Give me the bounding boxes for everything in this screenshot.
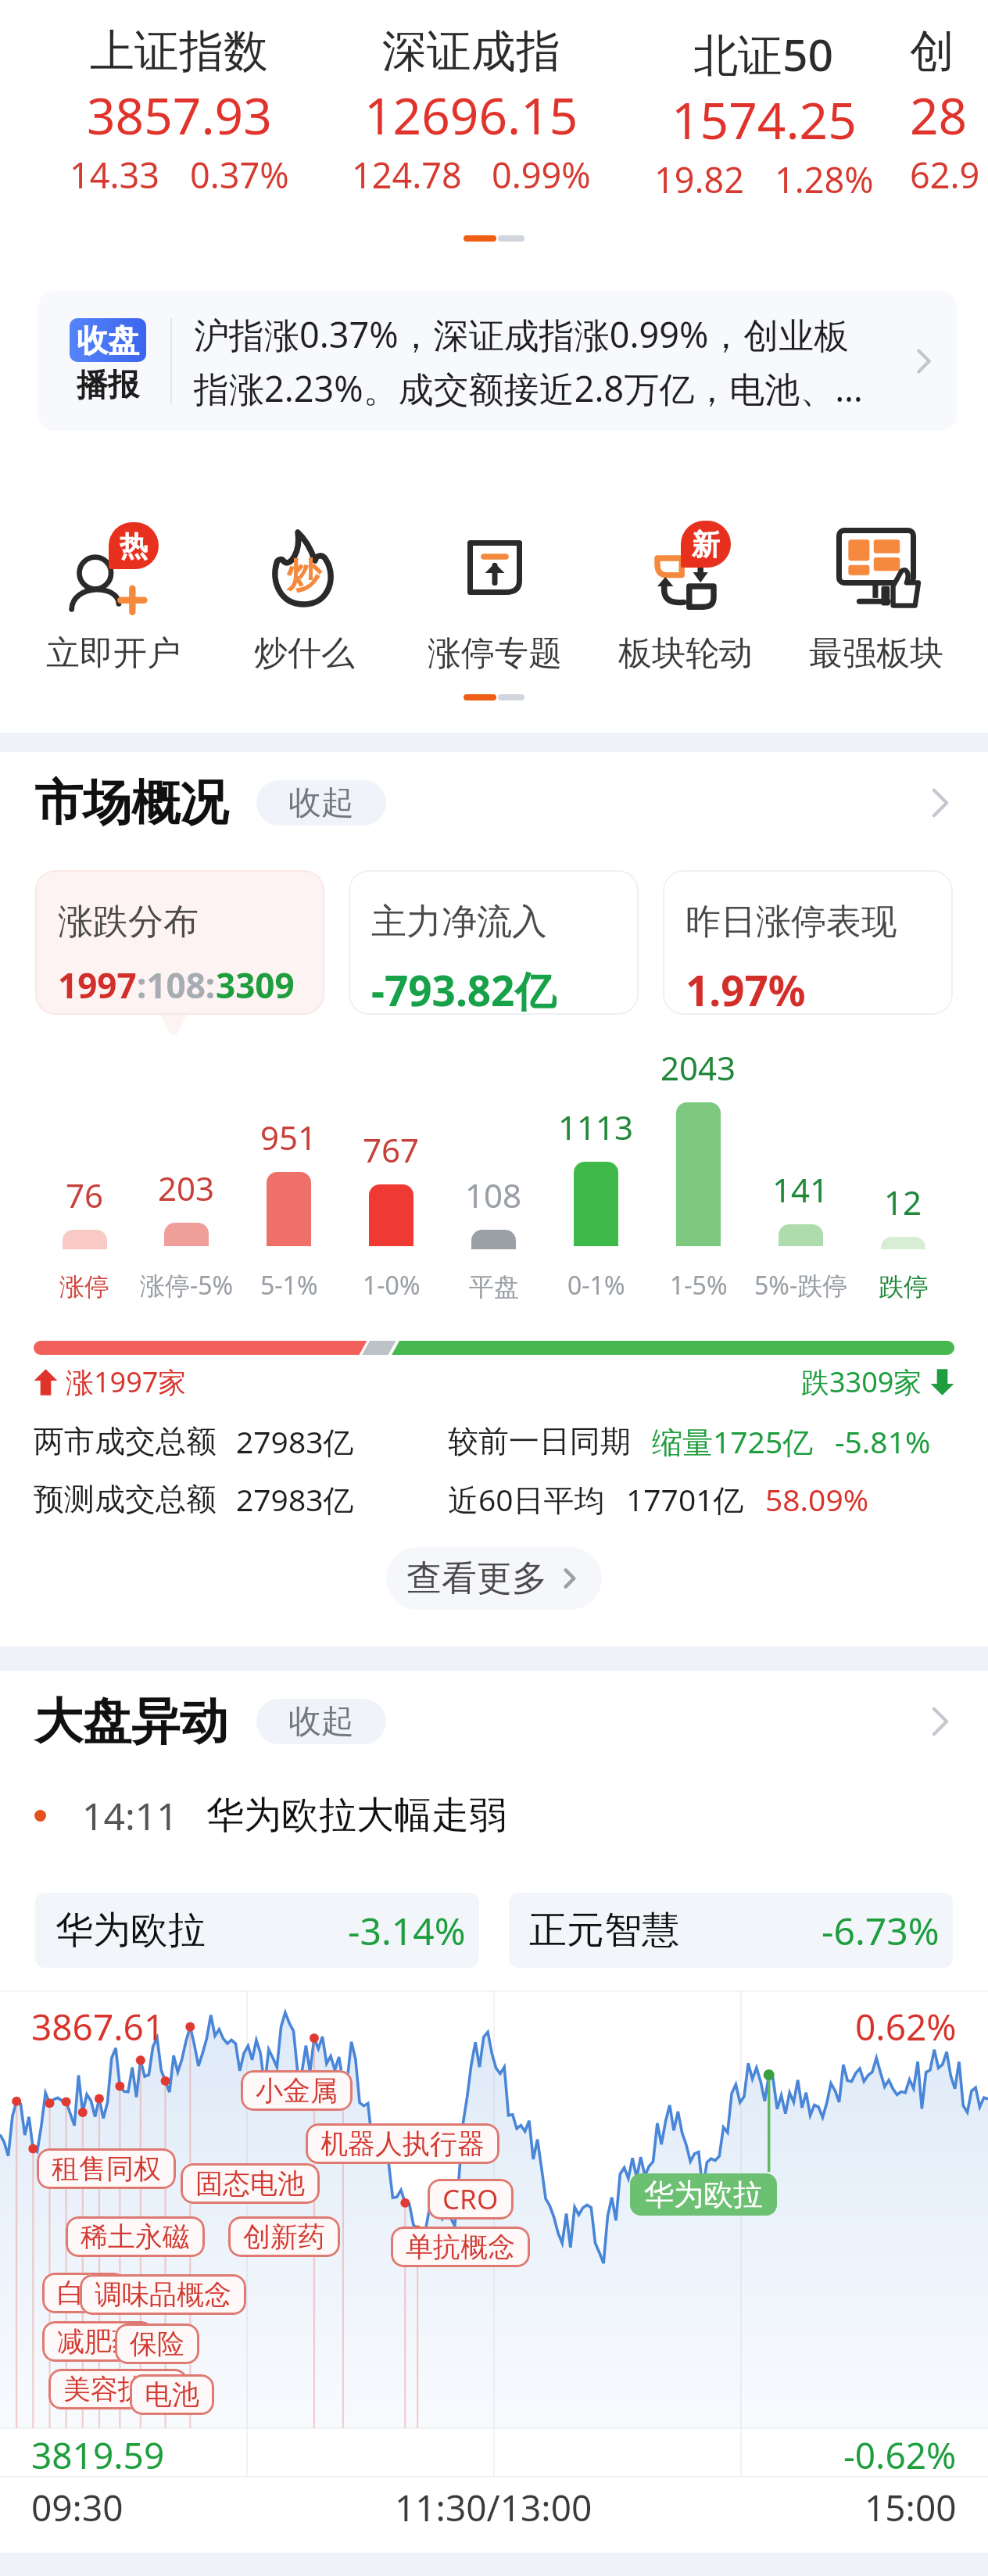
staticText: 涨停-5% xyxy=(140,1268,234,1302)
staticText: 0.99% xyxy=(492,151,591,199)
button[interactable]: 主力净流入 xyxy=(349,870,639,1015)
button[interactable]: 北证50 xyxy=(617,23,910,203)
staticText: 108 xyxy=(465,1173,522,1217)
staticText: 19.82 xyxy=(654,156,745,203)
staticText: 5-1% xyxy=(260,1268,318,1302)
staticText: 炒什么 xyxy=(254,632,355,675)
button[interactable]: 昨日涨停表现 xyxy=(663,870,953,1015)
other: 涨停专题 xyxy=(467,540,522,595)
button[interactable]: 立即开户 xyxy=(18,520,209,675)
button[interactable]: 查看更多 xyxy=(386,1547,602,1610)
staticText: :108: xyxy=(137,962,216,1009)
staticText: 机器人执行器 xyxy=(320,2126,485,2161)
staticText: 主力净流入 xyxy=(371,900,547,944)
staticText: 767 xyxy=(363,1127,420,1172)
staticText: -5.81% xyxy=(835,1421,931,1462)
staticText: 新 xyxy=(692,527,720,562)
staticText: 查看更多 xyxy=(406,1557,547,1601)
button[interactable]: 创业板指 xyxy=(910,23,988,199)
button[interactable]: 正元智慧 xyxy=(509,1893,953,1968)
staticText: 华为欧拉 xyxy=(55,1907,206,1954)
staticText: 板块轮动 xyxy=(618,632,753,675)
staticText: 涨停专题 xyxy=(428,632,562,675)
staticText: 3819.59 xyxy=(31,2431,165,2480)
staticText: 深证成指 xyxy=(382,23,560,80)
staticText: 保险 xyxy=(130,2327,184,2361)
staticText: 1113 xyxy=(558,1105,634,1149)
staticText: 近60日平均 xyxy=(448,1478,605,1520)
staticText: 1.97% xyxy=(686,962,806,1015)
staticText: 27983亿 xyxy=(236,1421,354,1462)
staticText: 1997 xyxy=(58,962,137,1009)
staticText: 12 xyxy=(884,1180,922,1224)
staticText: CRO xyxy=(442,2180,499,2218)
staticText: 1574.25 xyxy=(671,86,857,154)
staticText: 炒 xyxy=(287,554,321,597)
staticText: 收起 xyxy=(288,783,354,824)
staticText: 124.78 xyxy=(352,151,462,199)
staticText: 15:00 xyxy=(864,2483,957,2532)
staticText: 华为欧拉大幅走弱 xyxy=(206,1792,507,1839)
staticText: 较前一日同期 xyxy=(448,1422,631,1460)
staticText: 09:30 xyxy=(31,2483,123,2532)
staticText: 立即开户 xyxy=(46,632,181,675)
button[interactable]: 深证成指 xyxy=(325,23,617,199)
button[interactable]: 最强板块 xyxy=(781,520,972,675)
staticText: 美容护理 xyxy=(63,2372,173,2406)
staticText: 租售同权 xyxy=(52,2151,161,2186)
staticText: 1-0% xyxy=(363,1268,421,1302)
staticText: 14:11 xyxy=(82,1790,178,1841)
staticText: 正元智慧 xyxy=(529,1907,679,1954)
staticText: 减肥药 xyxy=(57,2324,139,2359)
staticText: 涨1997家 xyxy=(66,1363,187,1401)
other: 立即开户 xyxy=(68,522,159,613)
staticText: 最强板块 xyxy=(809,632,943,675)
staticText: 上证指数 xyxy=(90,23,268,80)
staticText: 17701亿 xyxy=(626,1478,744,1520)
button[interactable]: 炒什么 xyxy=(209,520,399,675)
button[interactable]: 14:11 xyxy=(0,1772,988,1858)
button[interactable]: 大盘异动 xyxy=(0,1671,988,1772)
staticText: 沪指涨0.37%，深证成指涨0.99%，创业板 指涨2.23%。成交额接近2.8… xyxy=(194,310,866,412)
button[interactable]: 华为欧拉 xyxy=(35,1893,479,1968)
staticText: -793.82亿 xyxy=(371,962,557,1015)
staticText: 涨停 xyxy=(59,1271,109,1302)
staticText: 预测成交总额 xyxy=(34,1480,217,1518)
staticText: 58.09% xyxy=(765,1478,869,1520)
staticText: 平盘 xyxy=(469,1271,519,1302)
staticText: 11:30/13:00 xyxy=(395,2483,592,2532)
staticText: 1.28% xyxy=(775,156,874,203)
staticText: 稀土永磁 xyxy=(81,2220,190,2254)
staticText: 播报 xyxy=(77,365,139,404)
staticText: 昨日涨停表现 xyxy=(686,900,897,944)
other: 板块轮动 xyxy=(639,521,732,614)
button[interactable]: 市场概况 xyxy=(0,752,988,854)
staticText: 跌3309家 xyxy=(801,1363,922,1401)
staticText: 3309 xyxy=(216,962,295,1009)
staticText: 14.33 xyxy=(70,151,160,199)
staticText: 2838.15 xyxy=(910,81,988,149)
staticText: 电池 xyxy=(145,2377,199,2412)
staticText: 创业板指 xyxy=(910,23,988,80)
other: 展开 xyxy=(918,780,963,826)
staticText: 调味品概念 xyxy=(95,2277,231,2312)
button[interactable]: 收盘 xyxy=(38,291,957,431)
button[interactable]: 上证指数 xyxy=(33,23,325,199)
staticText: 203 xyxy=(158,1166,215,1210)
staticText: 5%-跌停 xyxy=(754,1268,848,1302)
other: 查看详情 xyxy=(905,342,943,380)
button[interactable]: 涨停专题 xyxy=(399,520,590,675)
staticText: 涨跌分布 xyxy=(58,900,199,944)
staticText: 27983亿 xyxy=(236,1478,354,1520)
staticText: 141 xyxy=(772,1167,829,1212)
button[interactable]: 板块轮动 xyxy=(590,520,781,675)
staticText: -6.73% xyxy=(822,1905,940,1956)
staticText: 缩量1725亿 xyxy=(652,1421,814,1462)
staticText: 华为欧拉 xyxy=(644,2176,763,2213)
staticText: 大盘异动 xyxy=(34,1691,228,1752)
staticText: 3857.93 xyxy=(87,81,272,149)
staticText: -3.14% xyxy=(348,1905,466,1956)
other: 展开 xyxy=(918,1699,963,1744)
staticText: 跌停 xyxy=(879,1271,929,1302)
button[interactable]: 涨跌分布 xyxy=(35,870,324,1015)
